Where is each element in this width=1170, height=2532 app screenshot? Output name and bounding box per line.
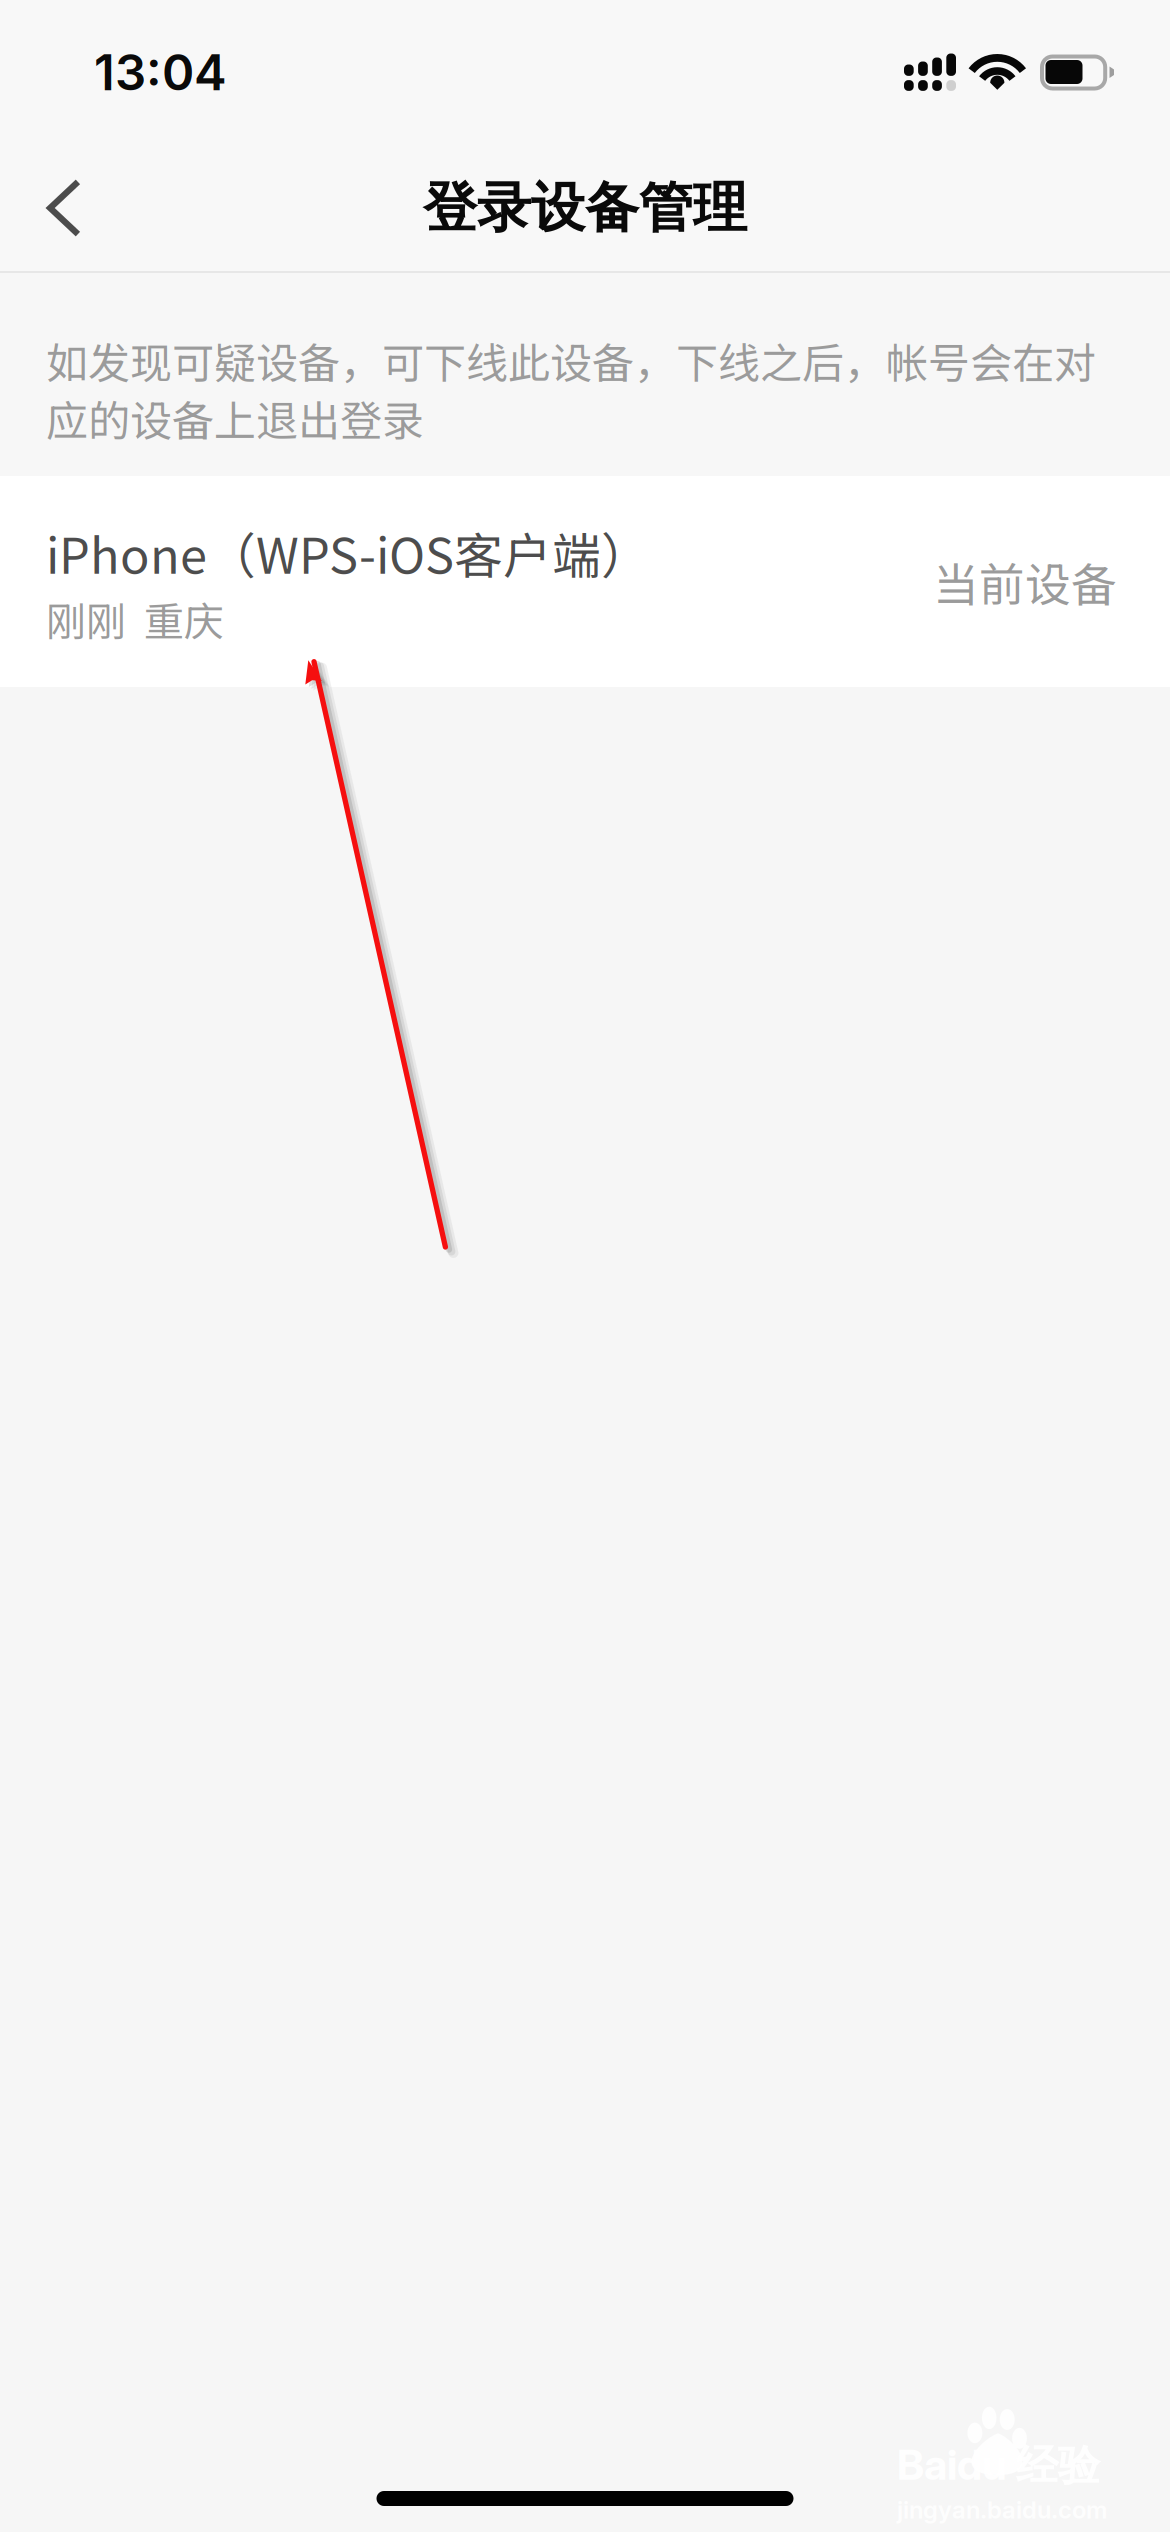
staticText: 刚刚 重庆	[46, 590, 224, 648]
staticText: 如发现可疑设备，可下线此设备，下线之后，帐号会在对应的设备上退出登录	[46, 330, 1096, 449]
staticText: iPhone（WPS-iOS客户端）	[46, 517, 650, 588]
staticText: 13:04	[94, 43, 227, 102]
button[interactable]: 返回	[0, 145, 112, 271]
staticText: 登录设备管理	[423, 174, 747, 242]
button[interactable]: iPhone（WPS-iOS客户端）	[0, 476, 1170, 687]
staticText: Baidu 经验	[897, 2439, 1100, 2492]
staticText: 当前设备	[933, 548, 1117, 615]
